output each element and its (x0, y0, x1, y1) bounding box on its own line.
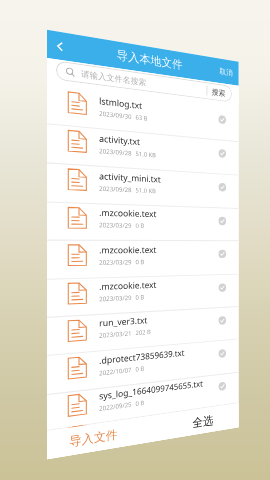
staticText: activity_mini.txt (99, 170, 161, 186)
staticText: 0 B (135, 365, 144, 374)
staticText: 2023/09/28 (99, 147, 132, 158)
staticText: 导入本地文件 (117, 47, 183, 72)
staticText: 0 B (135, 222, 144, 230)
staticText: 2023/03/29 (99, 258, 132, 267)
staticText: activity.txt (99, 132, 140, 148)
staticText: 51.0 KB (135, 150, 157, 159)
button[interactable]: 请输入文件名搜索 (56, 60, 232, 102)
staticText: sys_log_1664099745655.txt (99, 378, 203, 403)
staticText: 2022/09/25 (99, 400, 132, 413)
staticText: .dprotect73859639.txt (99, 347, 185, 367)
button[interactable]: run_ver3.txt (47, 307, 239, 356)
staticText: 全选 (192, 412, 213, 430)
staticText: 0 B (135, 258, 144, 266)
button[interactable]: 全选 (192, 412, 213, 430)
staticText: .mzcookie.text (99, 206, 157, 220)
staticText: 202 B (135, 328, 151, 337)
button[interactable]: Back (47, 30, 71, 61)
staticText: 搜索 (212, 87, 225, 98)
button[interactable]: activity_mini.txt (47, 163, 239, 209)
button[interactable]: activity.txt (47, 124, 239, 176)
staticText: 0 B (135, 293, 144, 302)
button[interactable]: .mzcookie.text (47, 241, 239, 280)
button[interactable]: 取消 (213, 58, 238, 86)
staticText: 2023/09/28 (99, 184, 132, 194)
staticText: run_ver3.txt (99, 314, 148, 329)
staticText: lstmlog.txt (99, 95, 142, 112)
staticText: 2023/03/21 (99, 329, 132, 340)
staticText: 63 B (135, 113, 148, 123)
staticText: 2022/10/07 (99, 366, 132, 377)
staticText: .mzcookie.text (99, 279, 157, 293)
staticText: 取消 (219, 66, 233, 78)
staticText: 2023/09/30 (99, 109, 132, 121)
button[interactable]: .dprotect73859639.txt (47, 339, 239, 395)
staticText: 2023/03/29 (99, 294, 132, 303)
staticText: 2023/03/29 (99, 221, 132, 230)
staticText: 导入文件 (69, 427, 117, 449)
button[interactable]: .mzcookie.text (47, 275, 239, 318)
staticText: 0 B (135, 399, 144, 408)
button[interactable]: sys_log_1664099745655.txt (47, 373, 239, 431)
staticText: 请输入文件名搜索 (81, 68, 146, 87)
staticText: 51.0 KB (135, 186, 157, 195)
staticText: .mzcookie.text (99, 244, 157, 256)
button[interactable]: lstmlog.txt (47, 85, 239, 142)
button[interactable]: 导入文件 (69, 427, 117, 449)
button[interactable]: .mzcookie.text (47, 203, 239, 241)
